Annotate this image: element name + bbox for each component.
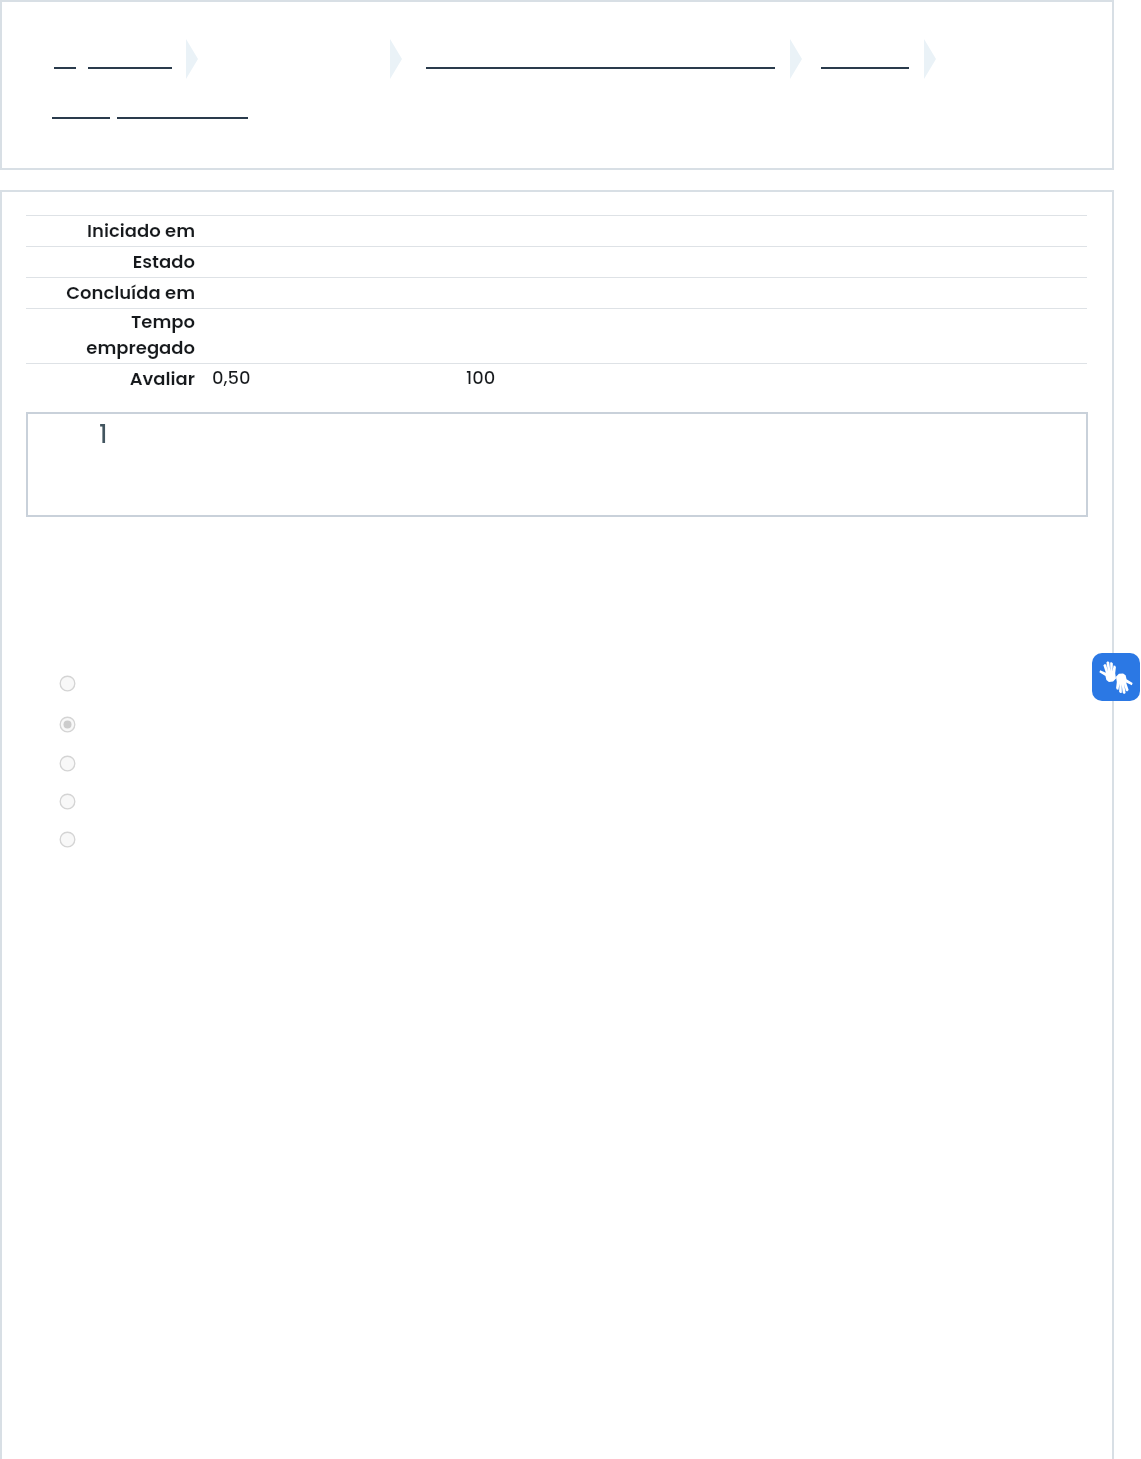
- staticText: Concluída em: [22, 280, 195, 305]
- staticText: 100: [466, 365, 496, 390]
- button[interactable]: Tentativa: [117, 101, 248, 119]
- staticText: Estado: [22, 249, 195, 274]
- button[interactable]: Opção: [59, 675, 76, 692]
- button[interactable]: Página inicial: [54, 51, 76, 69]
- staticText: Avaliar: [22, 366, 195, 391]
- button[interactable]: Módulo: [821, 51, 909, 69]
- staticText: Iniciado em: [22, 218, 195, 243]
- button[interactable]: Opção: [59, 755, 76, 772]
- button[interactable]: Meus cursos: [88, 51, 172, 69]
- staticText: 0,50: [212, 365, 251, 390]
- button[interactable]: Acessibilidade em Libras: [1092, 653, 1140, 701]
- button[interactable]: Opção selecionada: [59, 716, 76, 733]
- button[interactable]: Opção: [59, 831, 76, 848]
- button[interactable]: Opção: [59, 793, 76, 810]
- button[interactable]: Questionário: [52, 101, 110, 119]
- staticText: 1: [99, 418, 108, 452]
- staticText: Tempo empregado: [22, 309, 195, 360]
- button[interactable]: Curso: [426, 51, 775, 69]
